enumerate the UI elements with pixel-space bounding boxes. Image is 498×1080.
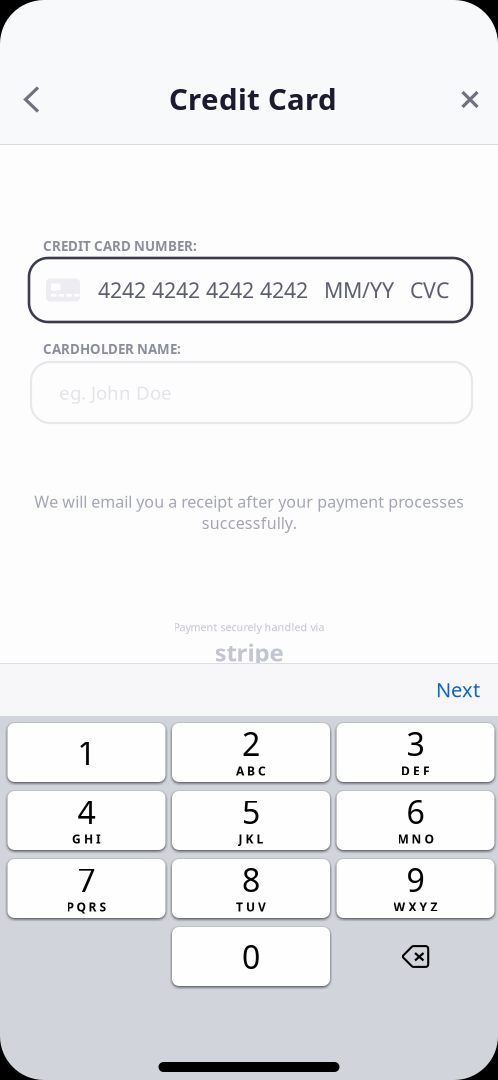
- staticText: W X Y Z: [393, 899, 437, 915]
- staticText: Payment securely handled via: [173, 620, 324, 634]
- button[interactable]: 0: [172, 927, 330, 986]
- staticText: Next: [436, 676, 480, 703]
- staticText: G H I: [72, 831, 101, 847]
- staticText: T U V: [236, 899, 266, 915]
- staticText: stripe: [214, 636, 283, 668]
- staticText: 4242 4242 4242 4242: [98, 276, 308, 304]
- button[interactable]: 8: [172, 859, 330, 918]
- button[interactable]: 1: [7, 723, 165, 782]
- staticText: CREDIT CARD NUMBER:: [43, 237, 197, 255]
- button[interactable]: Delete: [336, 927, 494, 986]
- staticText: 1: [77, 731, 95, 774]
- button[interactable]: Next: [418, 664, 498, 714]
- staticText: MM/YY: [324, 276, 394, 304]
- button[interactable]: 2: [172, 723, 330, 782]
- button[interactable]: 3: [336, 723, 494, 782]
- staticText: eg. John Doe: [59, 380, 172, 405]
- button[interactable]: Back: [0, 66, 64, 132]
- staticText: Credit Card: [169, 79, 337, 118]
- button[interactable]: 9: [336, 859, 494, 918]
- staticText: We will email you a receipt after your p…: [34, 491, 464, 533]
- button[interactable]: 5: [172, 791, 330, 850]
- staticText: 0: [242, 935, 260, 978]
- staticText: CARDHOLDER NAME:: [43, 340, 181, 358]
- staticText: CVC: [410, 276, 449, 304]
- staticText: 8: [242, 858, 260, 901]
- staticText: J K L: [238, 831, 263, 847]
- staticText: 6: [406, 790, 424, 833]
- staticText: 3: [406, 722, 424, 765]
- staticText: 7: [77, 858, 95, 901]
- staticText: A B C: [236, 763, 266, 779]
- button[interactable]: 7: [7, 859, 165, 918]
- staticText: 5: [242, 790, 260, 833]
- button[interactable]: 4: [7, 791, 165, 850]
- staticText: 2: [242, 722, 260, 765]
- staticText: 4: [77, 790, 95, 833]
- staticText: D E F: [401, 763, 430, 779]
- staticText: 9: [406, 858, 424, 901]
- staticText: M N O: [397, 831, 433, 847]
- button[interactable]: Close: [442, 66, 498, 132]
- staticText: P Q R S: [66, 899, 106, 915]
- button[interactable]: 6: [336, 791, 494, 850]
